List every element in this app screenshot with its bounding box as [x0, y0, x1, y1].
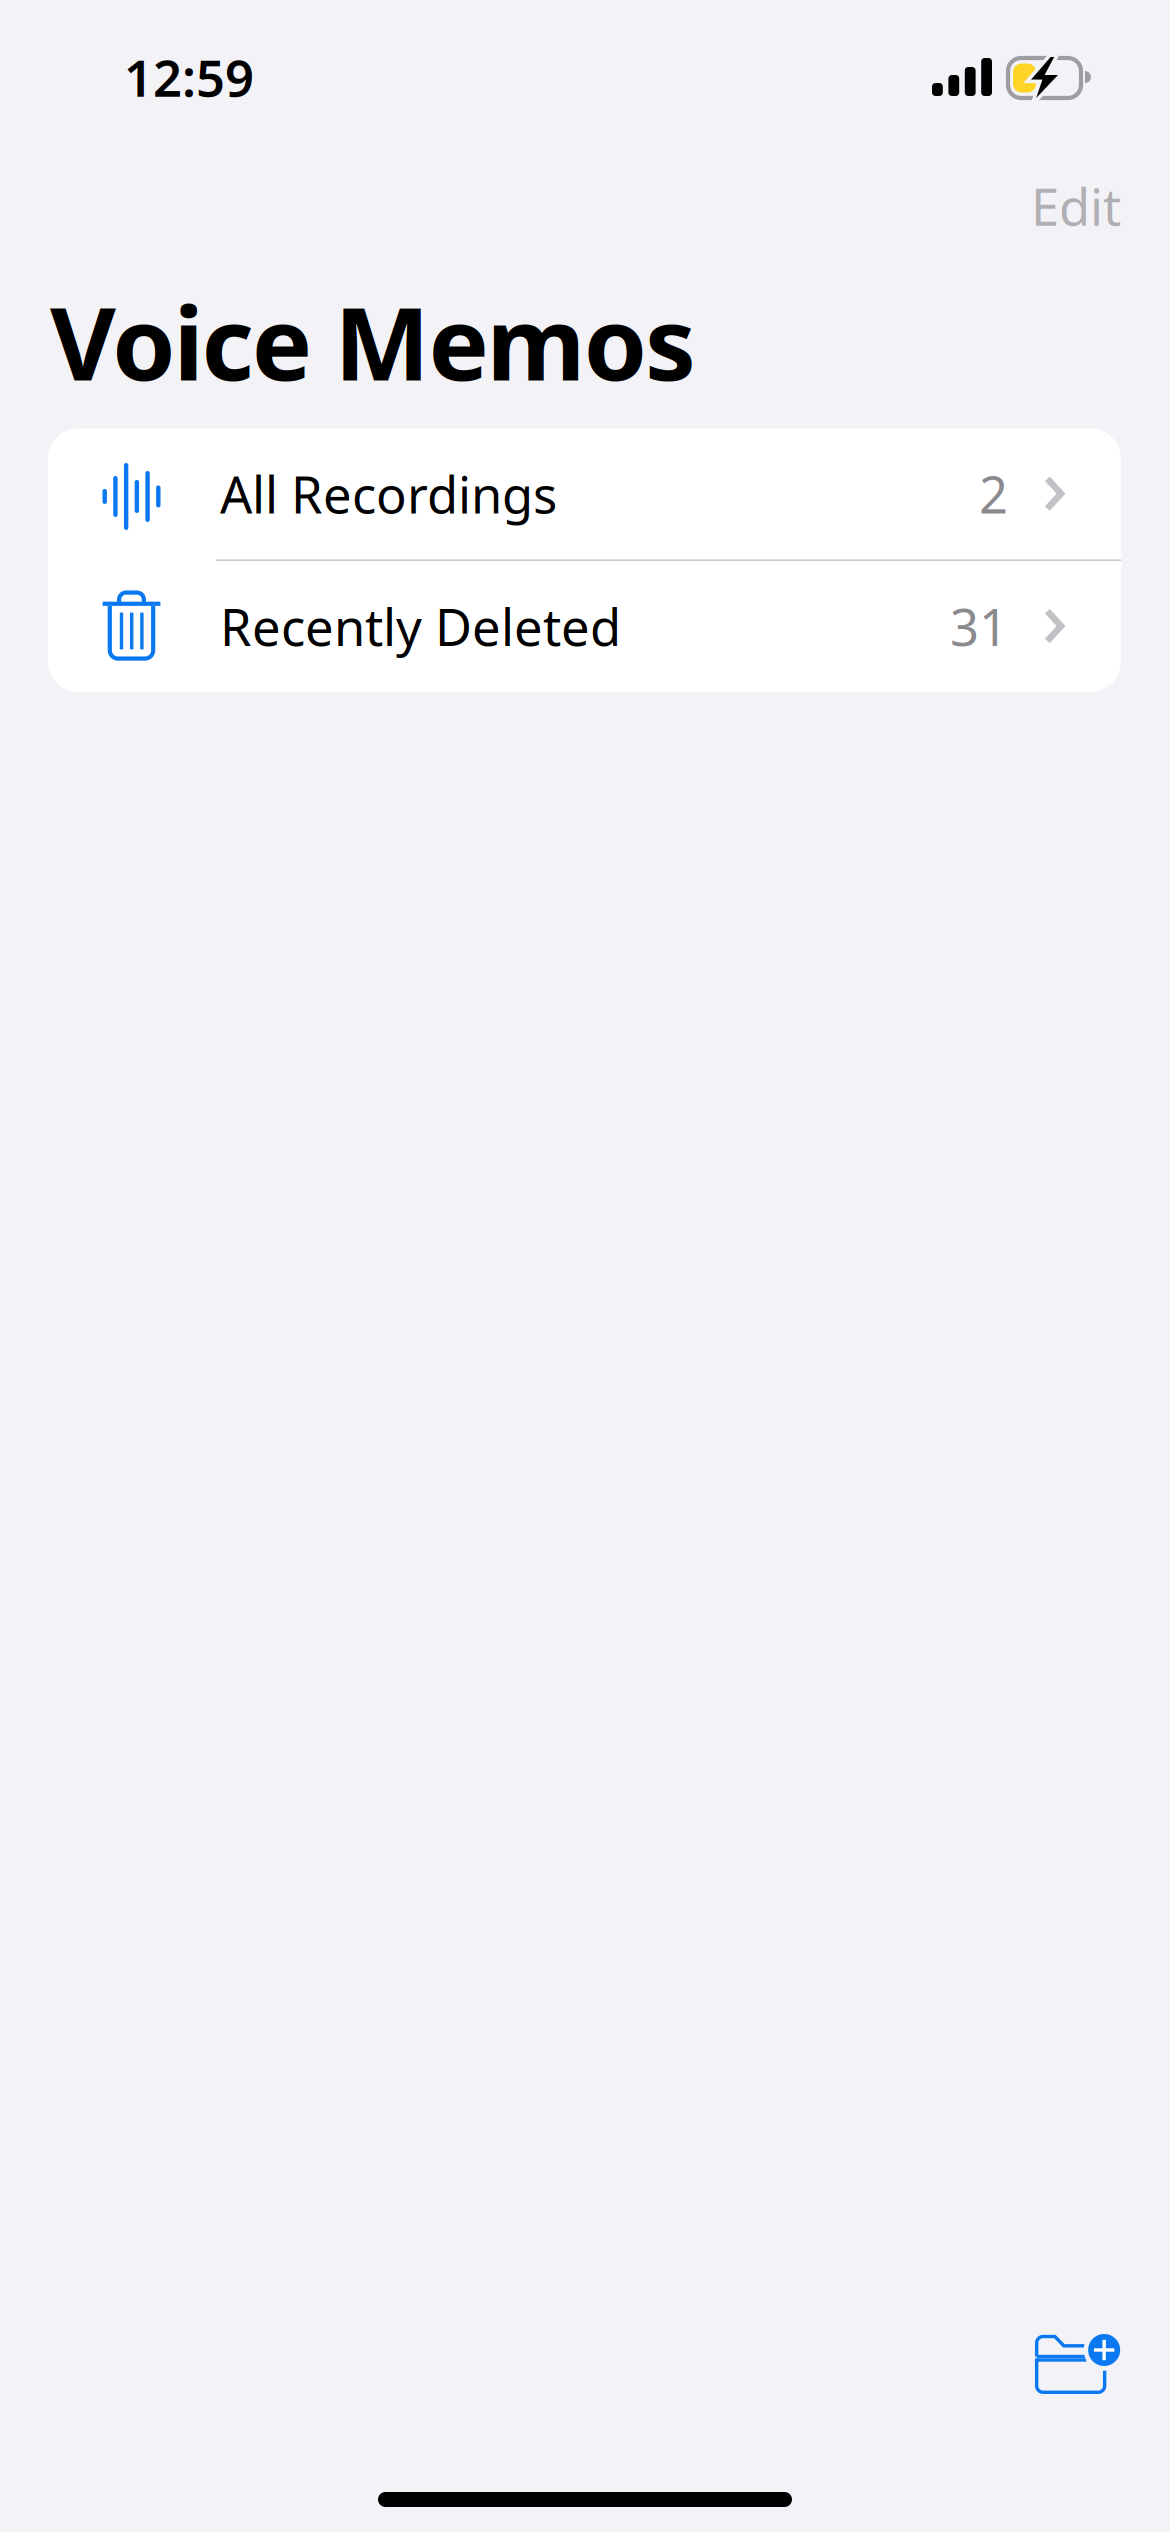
- staticText: 12:59: [124, 43, 254, 111]
- staticText: 31: [950, 593, 1008, 660]
- button[interactable]: New Folder: [1004, 2302, 1154, 2428]
- button[interactable]: Edit: [1013, 154, 1139, 258]
- button[interactable]: Recently Deleted: [48, 561, 1121, 692]
- staticText: Voice Memos: [50, 274, 696, 409]
- staticText: Recently Deleted: [220, 593, 621, 660]
- staticText: 2: [979, 460, 1008, 528]
- staticText: All Recordings: [220, 460, 557, 528]
- staticText: Edit: [1031, 172, 1121, 240]
- button[interactable]: All Recordings: [48, 429, 1121, 559]
